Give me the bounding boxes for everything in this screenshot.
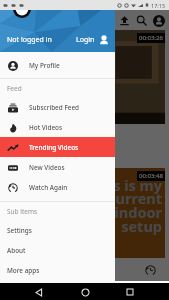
staticText: Subscribed Feed (29, 103, 80, 112)
button[interactable]: this is my current indoor setup (0, 168, 165, 258)
staticText: Sub items (7, 207, 38, 216)
button[interactable]: About (0, 240, 115, 260)
button[interactable]: Account (150, 12, 167, 29)
staticText: About (7, 246, 26, 255)
staticText: New Videos (29, 163, 65, 172)
button[interactable]: Trending Videos (0, 137, 115, 157)
button[interactable]: New Videos (0, 157, 115, 177)
button[interactable]: Hot Videos (0, 117, 115, 137)
button[interactable]: Home (78, 285, 92, 299)
staticText: A channel (2, 137, 30, 145)
staticText: Login (76, 35, 95, 45)
staticText: 17:15 (151, 2, 166, 9)
button[interactable]: Settings (0, 220, 115, 240)
staticText: 00:03:26 (139, 34, 163, 42)
button[interactable]: My Profile (0, 52, 115, 78)
staticText: Hot Videos (29, 123, 63, 132)
button[interactable]: Back (32, 285, 46, 299)
button[interactable]: 00:03:26 (0, 30, 165, 168)
staticText: 00:03:48 (139, 172, 163, 180)
staticText: Not logged in (7, 35, 52, 45)
staticText: My Profile (29, 61, 60, 70)
button[interactable]: Recents (123, 285, 137, 299)
staticText: this is my current indoor setup (93, 175, 162, 236)
staticText: More apps (7, 266, 40, 275)
button[interactable]: Search (133, 12, 150, 29)
button[interactable]: Watch Again (0, 177, 115, 197)
button[interactable]: Profile photo (13, 0, 31, 18)
button[interactable]: More apps (0, 260, 115, 280)
button[interactable]: Login (76, 34, 110, 46)
button[interactable]: Subscribed Feed (0, 97, 115, 117)
button[interactable]: History (141, 261, 159, 279)
staticText: Feed (7, 84, 22, 93)
staticText: Watch Again (29, 183, 68, 192)
button[interactable]: Upload (116, 12, 133, 29)
staticText: Settings (7, 226, 32, 235)
staticText: Trending Videos (29, 143, 79, 152)
staticText: Hello (2, 126, 20, 136)
